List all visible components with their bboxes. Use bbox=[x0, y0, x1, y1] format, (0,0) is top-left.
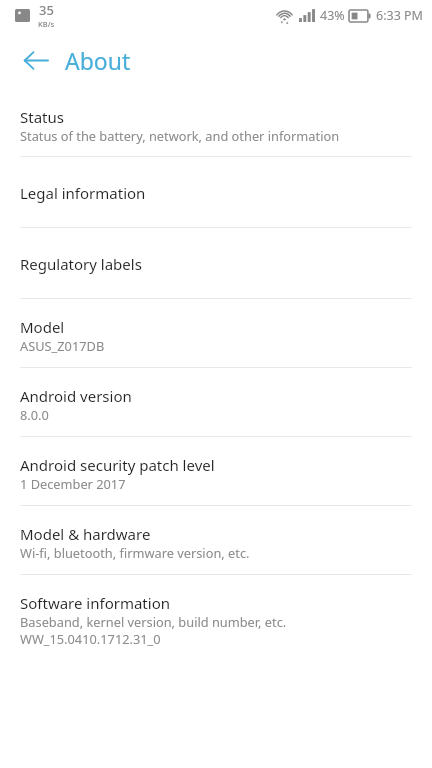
button[interactable]: Legal information bbox=[0, 157, 432, 227]
staticText: 35 bbox=[39, 1, 54, 19]
button[interactable]: Model bbox=[0, 299, 432, 367]
staticText: 8.0.0 bbox=[20, 406, 49, 423]
staticText: Model & hardware bbox=[20, 524, 151, 544]
staticText: WW_15.0410.1712.31_0 bbox=[20, 630, 161, 647]
staticText: ASUS_Z017DB bbox=[20, 337, 105, 354]
staticText: Model bbox=[20, 317, 65, 337]
staticText: 1 December 2017 bbox=[20, 475, 126, 492]
staticText: Software information bbox=[20, 593, 170, 613]
button[interactable]: Back bbox=[12, 37, 58, 83]
staticText: Legal information bbox=[20, 183, 146, 203]
staticText: Regulatory labels bbox=[20, 254, 142, 274]
button[interactable]: Model & hardware bbox=[0, 506, 432, 574]
button[interactable]: Software information bbox=[0, 575, 432, 660]
staticText: About bbox=[65, 45, 131, 76]
staticText: KB/s bbox=[38, 19, 55, 29]
staticText: 6:33 PM bbox=[376, 7, 423, 24]
staticText: Status bbox=[20, 107, 64, 127]
button[interactable]: Status bbox=[0, 90, 432, 156]
button[interactable]: Android security patch level bbox=[0, 437, 432, 505]
button[interactable]: Regulatory labels bbox=[0, 228, 432, 298]
button[interactable]: Android version bbox=[0, 368, 432, 436]
staticText: Status of the battery, network, and othe… bbox=[20, 127, 340, 144]
staticText: Android security patch level bbox=[20, 455, 215, 475]
staticText: Baseband, kernel version, build number, … bbox=[20, 613, 287, 630]
staticText: 43% bbox=[320, 7, 345, 24]
staticText: Android version bbox=[20, 386, 132, 406]
staticText: Wi-fi, bluetooth, firmware version, etc. bbox=[20, 544, 250, 561]
